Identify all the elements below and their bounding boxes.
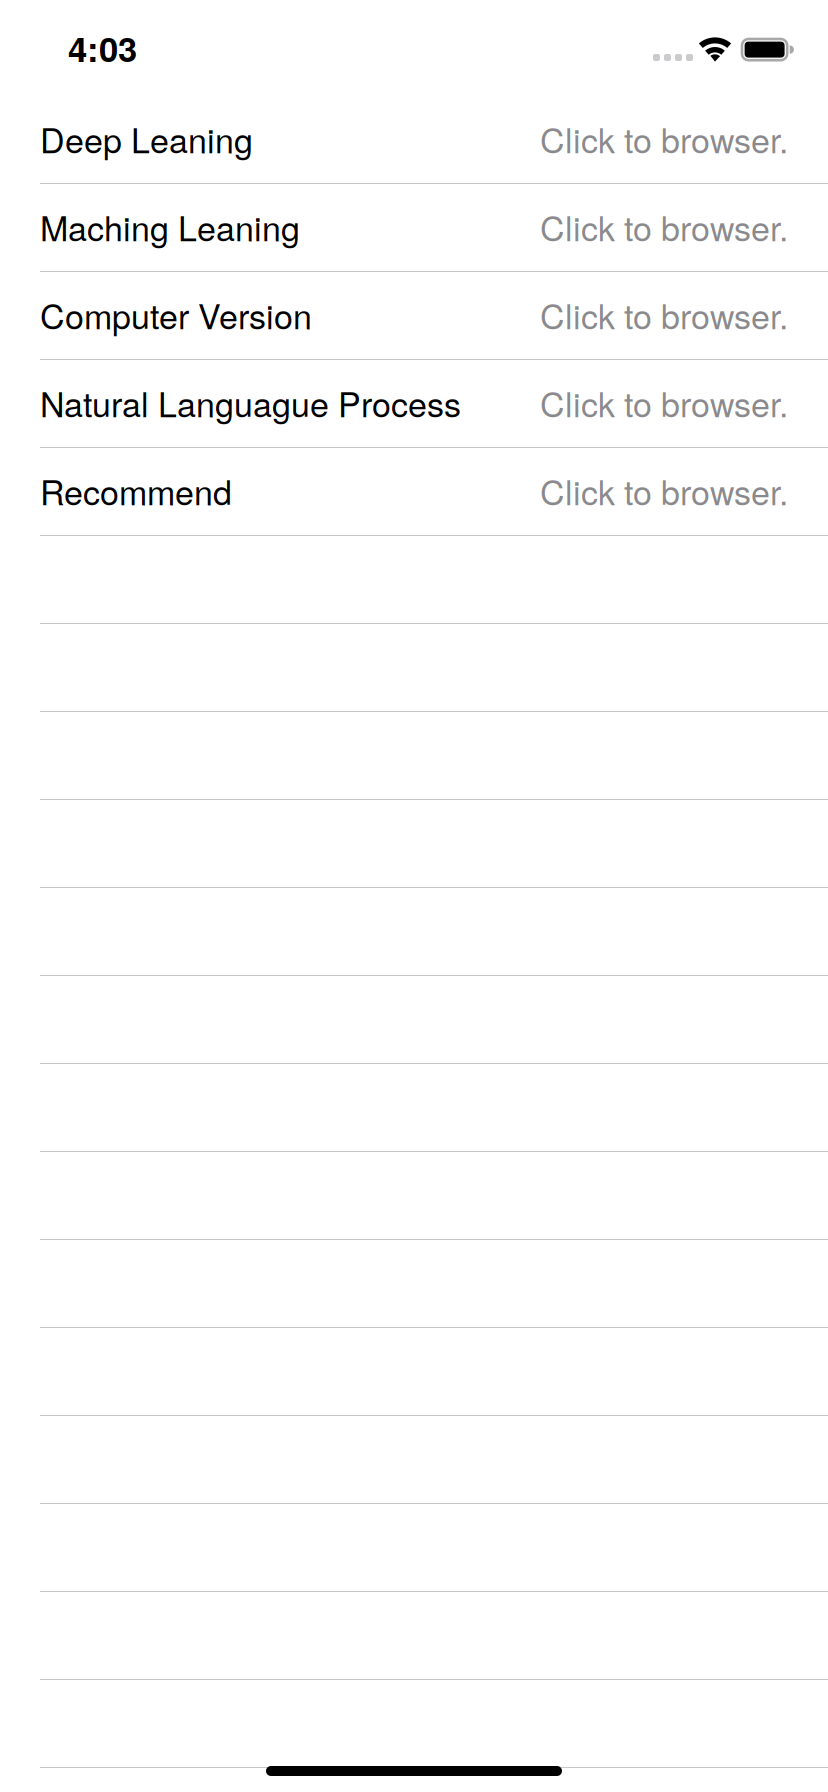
staticText: Recommend [40,466,232,515]
staticText: 4:03 [68,23,137,73]
staticText: Deep Leaning [40,114,253,163]
button[interactable]: Computer Version [0,272,828,360]
button[interactable]: Recommend [0,448,828,536]
staticText: Click to browser. [540,114,788,163]
staticText: Click to browser. [540,202,788,251]
staticText: Computer Version [40,290,312,339]
staticText: Natural Languague Process [40,378,461,427]
button[interactable]: Maching Leaning [0,184,828,272]
button[interactable]: Deep Leaning [0,96,828,184]
staticText: Click to browser. [540,378,788,427]
staticText: Maching Leaning [40,202,300,251]
staticText: Click to browser. [540,290,788,339]
staticText: Click to browser. [540,466,788,515]
button[interactable]: Natural Languague Process [0,360,828,448]
